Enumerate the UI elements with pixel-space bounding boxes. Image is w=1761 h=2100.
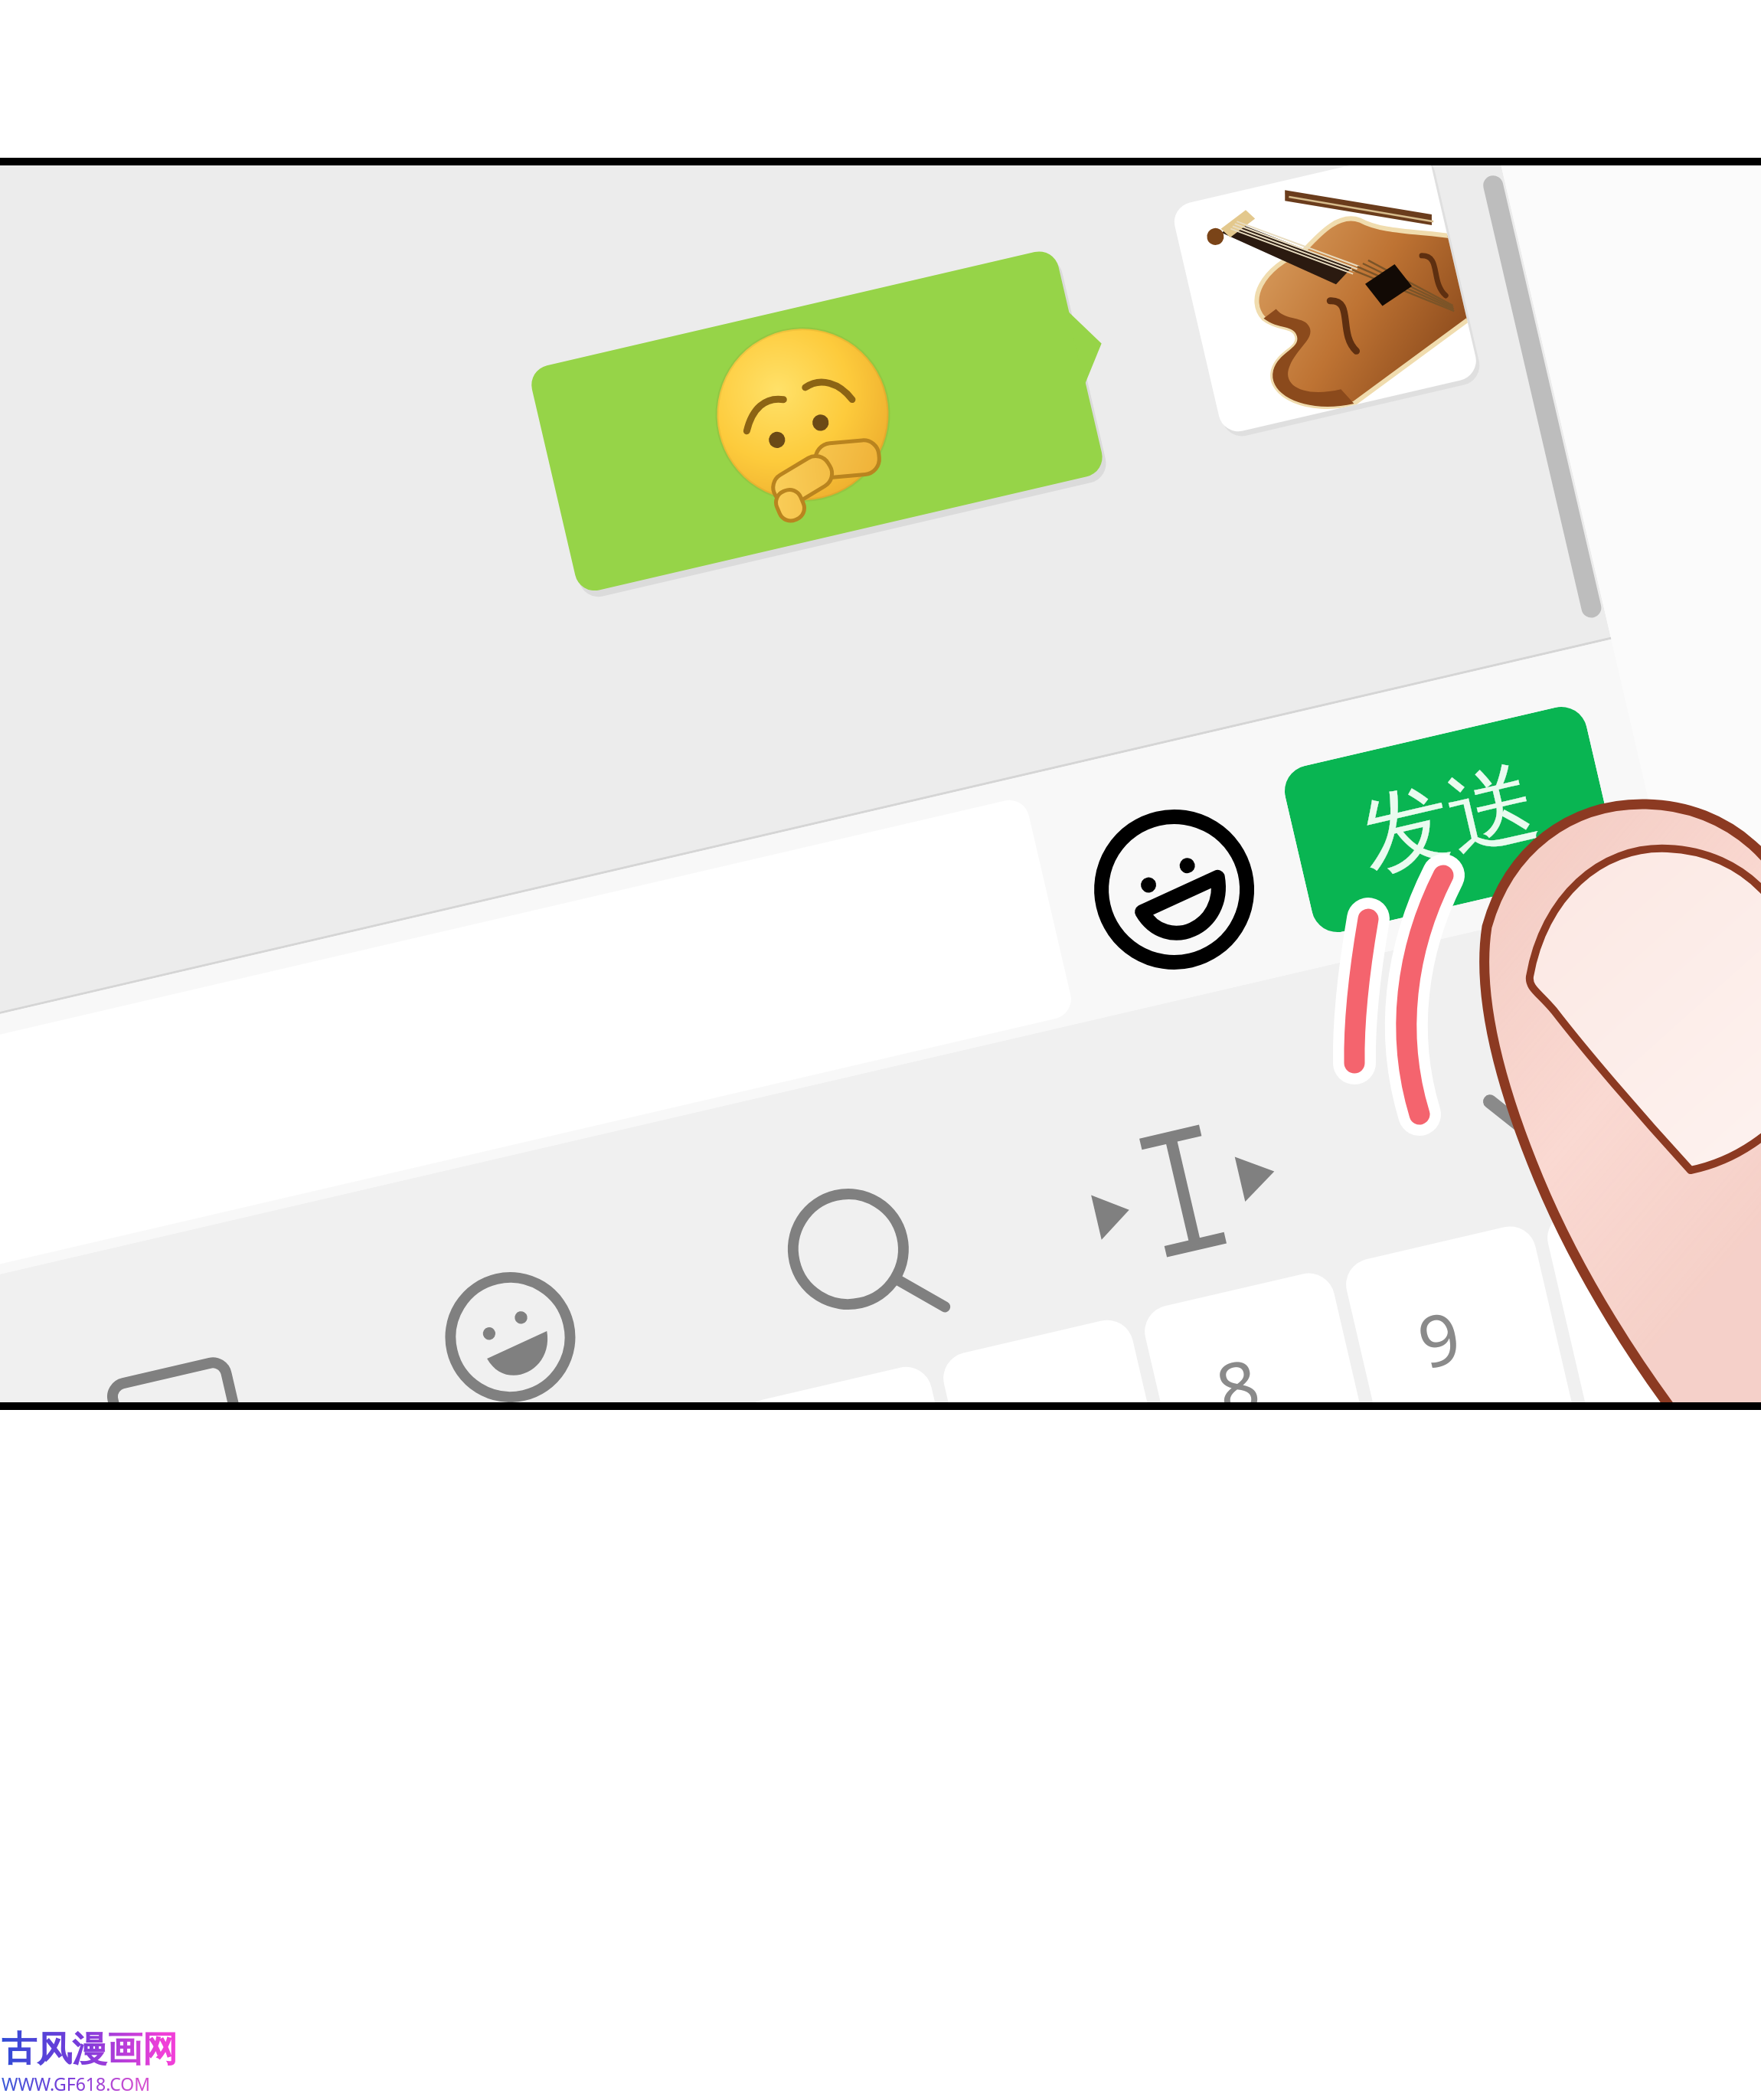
button[interactable]: Keyboard layout — [103, 1353, 248, 1402]
button[interactable]: Sent sticker message — [534, 299, 1100, 544]
staticText: 8 — [1207, 1335, 1268, 1402]
button[interactable]: Move cursor — [1091, 1118, 1275, 1264]
staticText: 9 — [1408, 1287, 1470, 1390]
button[interactable]: Search — [776, 1179, 922, 1324]
staticText: 0 — [1610, 1240, 1671, 1343]
button[interactable]: Confirm — [1463, 1028, 1616, 1173]
staticText: WWW.GF618.COM — [2, 2072, 151, 2095]
button[interactable]: Emoji — [437, 1264, 583, 1402]
staticText: 发送 — [1350, 745, 1549, 894]
button[interactable]: Emoji keyboard — [1103, 815, 1248, 960]
staticText: 古风漫画网 — [2, 2027, 178, 2072]
button[interactable]: Violin photo message — [1192, 176, 1460, 414]
button[interactable]: Message input field — [12, 942, 916, 1156]
button[interactable]: Send message — [1279, 702, 1619, 937]
